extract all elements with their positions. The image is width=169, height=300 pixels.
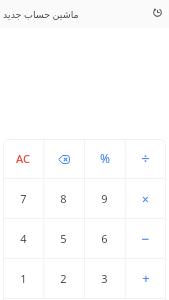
staticText: ماشین حساب جدید [3,8,79,21]
staticText: 7 [20,191,27,206]
staticText: 1 [20,271,27,286]
staticText: + [142,269,150,287]
staticText: % [100,150,110,166]
staticText: 2 [60,271,67,286]
staticText: 6 [101,231,108,246]
button[interactable]: + [125,259,166,299]
button[interactable]: 7 [3,179,43,219]
button[interactable]: % [84,139,125,179]
staticText: 4 [20,231,27,246]
button[interactable]: × [125,179,166,219]
staticText: 9 [101,191,108,206]
button[interactable]: 1 [3,259,43,299]
button[interactable]: ÷ [125,139,166,179]
staticText: × [142,191,149,207]
staticText: AC [16,151,30,166]
staticText: 5 [60,231,67,246]
button[interactable]: 9 [84,179,125,219]
button[interactable]: 3 [84,259,125,299]
button[interactable]: 5 [43,219,84,259]
staticText: 3 [101,271,108,286]
button[interactable]: Backspace [43,139,84,179]
button[interactable]: 6 [84,219,125,259]
staticText: − [141,229,150,248]
button[interactable]: 4 [3,219,43,259]
staticText: 8 [60,191,67,206]
button[interactable]: 8 [43,179,84,219]
button[interactable]: AC [3,139,43,179]
button[interactable]: 2 [43,259,84,299]
staticText: ÷ [141,148,150,168]
button[interactable]: History [147,2,167,22]
button[interactable]: − [125,219,166,259]
